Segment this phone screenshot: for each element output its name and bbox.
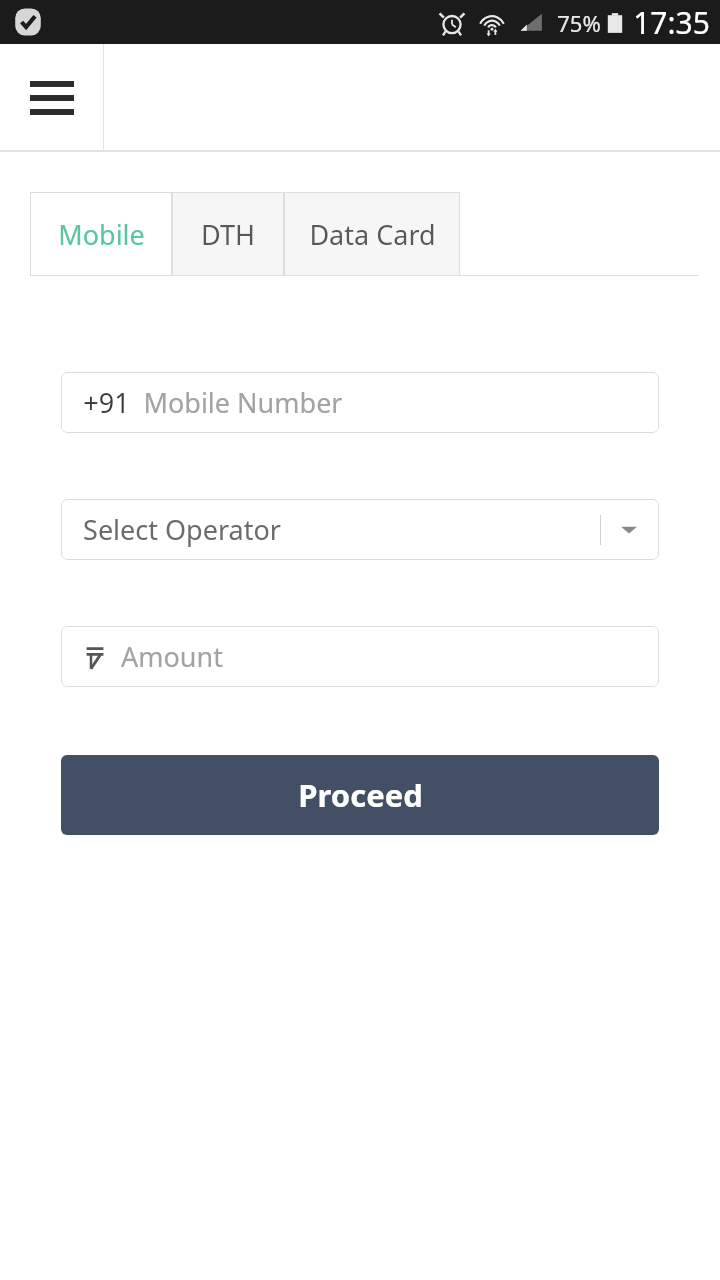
staticText: Proceed [298, 774, 423, 816]
staticText: Mobile [58, 216, 145, 253]
staticText: Mobile Number [143, 384, 343, 421]
button[interactable]: Select Operator [61, 499, 659, 560]
button[interactable]: Proceed [61, 755, 659, 835]
button[interactable]: Data Card [284, 192, 460, 276]
staticText: DTH [201, 216, 255, 253]
staticText: Data Card [309, 216, 436, 253]
button[interactable]: +91 [61, 372, 659, 433]
staticText: Amount [121, 638, 223, 675]
button[interactable]: Open navigation menu [0, 44, 103, 152]
button[interactable]: Mobile [30, 192, 172, 276]
staticText: 17:35 [633, 2, 710, 43]
button[interactable]: Amount [61, 626, 659, 687]
staticText: 75% [557, 8, 601, 38]
staticText: Select Operator [83, 511, 281, 548]
staticText: +91 [83, 384, 130, 421]
button[interactable]: DTH [172, 192, 284, 276]
